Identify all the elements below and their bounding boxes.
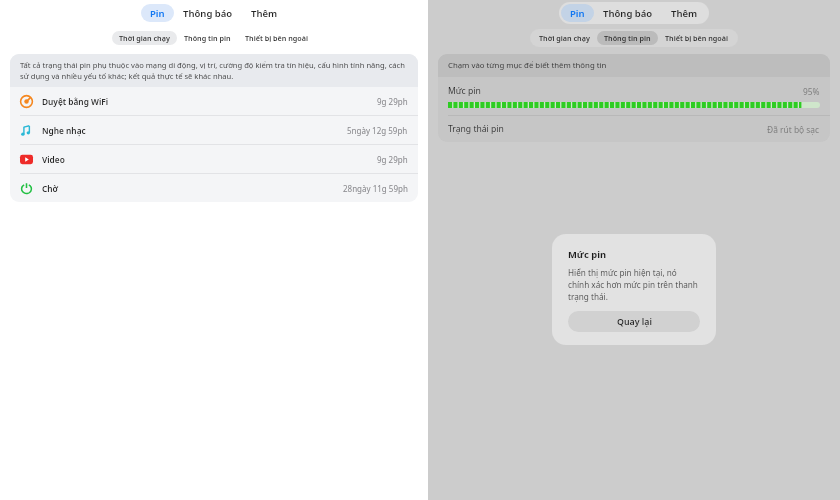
button[interactable]: Thêm [662, 4, 707, 22]
staticText: 28ngày 11g 59ph [343, 183, 408, 194]
staticText: Chờ [42, 183, 59, 194]
other: Video [20, 153, 33, 166]
button[interactable]: Thông tin pin [177, 31, 238, 45]
staticText: Nghe nhạc [42, 125, 86, 136]
button[interactable]: Thiết bị bên ngoài [658, 31, 736, 45]
button[interactable]: Thêm [242, 4, 287, 22]
staticText: Thêm [671, 7, 698, 20]
button[interactable]: Quay lại [568, 311, 700, 332]
staticText: 5ngày 12g 59ph [347, 125, 408, 136]
staticText: Thông báo [183, 7, 233, 20]
staticText: Thêm [251, 7, 278, 20]
staticText: Thông báo [603, 7, 653, 20]
staticText: Mức pin [448, 85, 481, 97]
staticText: Chạm vào từng mục để biết thêm thông tin [448, 60, 607, 71]
button[interactable]: Thông báo [594, 4, 662, 22]
other: Standby [20, 182, 33, 195]
button[interactable]: Video [10, 144, 418, 173]
staticText: Thông tin pin [184, 33, 231, 43]
staticText: Quay lại [617, 316, 652, 328]
button[interactable]: Thời gian chạy [112, 31, 177, 45]
button[interactable]: Thông tin pin [597, 31, 658, 45]
button[interactable]: Browser [10, 87, 418, 115]
staticText: Thời gian chạy [539, 33, 590, 43]
button[interactable]: Pin [561, 4, 594, 22]
staticText: Duyệt bằng WiFi [42, 96, 109, 107]
staticText: Tất cả trạng thái pin phụ thuộc vào mạng… [20, 60, 408, 81]
other: Browser [20, 95, 33, 108]
staticText: Pin [570, 7, 585, 20]
staticText: Hiển thị mức pin hiện tại, nó chính xác … [568, 267, 700, 302]
button[interactable]: Music [10, 115, 418, 144]
button[interactable]: Standby [10, 173, 418, 202]
other: Music [20, 124, 33, 137]
staticText: Thiết bị bên ngoài [665, 33, 729, 43]
button[interactable]: Thiết bị bên ngoài [238, 31, 316, 45]
staticText: 95% [803, 86, 820, 97]
staticText: Pin [150, 7, 165, 20]
button[interactable]: Trạng thái pin [448, 116, 820, 142]
button[interactable]: Thông báo [174, 4, 242, 22]
staticText: 9g 29ph [377, 154, 408, 165]
button[interactable]: Pin [141, 4, 174, 22]
button[interactable]: Mức pin [438, 77, 830, 115]
staticText: 9g 29ph [377, 96, 408, 107]
staticText: Thông tin pin [604, 33, 651, 43]
staticText: Đã rút bộ sạc [767, 124, 820, 135]
staticText: Mức pin [568, 248, 607, 261]
staticText: Trạng thái pin [448, 123, 504, 135]
staticText: Video [42, 154, 65, 165]
staticText: Thời gian chạy [119, 33, 170, 43]
button[interactable]: Thời gian chạy [532, 31, 597, 45]
staticText: Thiết bị bên ngoài [245, 33, 309, 43]
